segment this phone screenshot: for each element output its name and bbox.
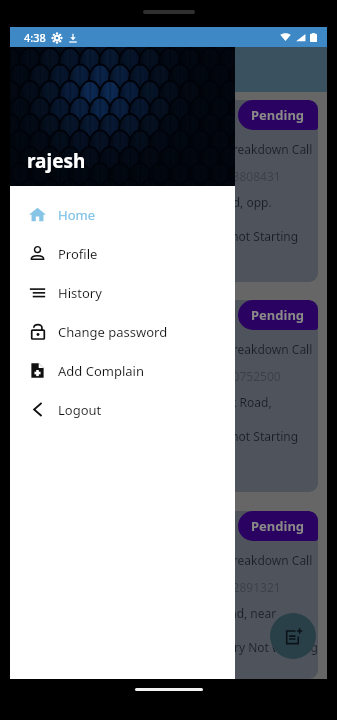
staticText: 4:38 [24,30,46,45]
button[interactable]: Pending [19,100,318,282]
staticText: 9880752500 [212,368,281,384]
staticText: Logout [58,401,102,419]
button[interactable]: Home [10,195,235,234]
button[interactable]: Change password [10,312,235,351]
staticText: Pending [251,106,305,124]
staticText: Mobile Number : [31,368,128,384]
staticText: 9742891321 [212,579,281,595]
button[interactable]: Logout [10,390,235,429]
staticText: Pending [251,517,305,535]
staticText: Breakdown Call [225,552,313,568]
staticText: Bike not Starting [204,428,299,444]
staticText: Breakdown Call [225,141,313,157]
button[interactable]: Add Complain [10,351,235,390]
staticText: Vijaya Bank Road, [172,394,272,410]
button[interactable]: Profile [10,234,235,273]
staticText: Market Road, near [172,605,277,621]
staticText: Address : [31,394,84,410]
staticText: Change password [58,323,168,341]
staticText: rajesh [27,148,86,174]
staticText: Home [58,206,95,224]
button[interactable]: Pending [19,511,318,679]
button[interactable]: Pending [19,300,318,492]
button[interactable]: Add complaint [270,613,316,659]
staticText: History [58,284,102,302]
staticText: Battery Not working [204,639,318,655]
staticText: Shivaji Road, opp. [172,194,272,210]
staticText: Pending [251,306,305,324]
staticText: Add Complain [58,362,144,380]
staticText: Bike not Starting [204,228,299,244]
staticText: Breakdown Call [225,341,313,357]
button[interactable]: History [10,273,235,312]
staticText: Complaint Type : [31,141,127,157]
staticText: 9008808431 [212,168,281,184]
staticText: Mobile Number : [31,168,128,184]
staticText: Profile [58,245,98,263]
staticText: Address : [31,194,84,210]
